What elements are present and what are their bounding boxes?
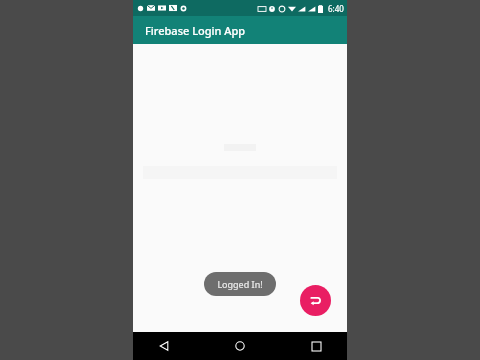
button[interactable]: Logged In! [204, 272, 276, 296]
button[interactable]: Home [227, 333, 253, 359]
button[interactable]: Back [151, 333, 177, 359]
button[interactable]: Recent apps [303, 333, 329, 359]
staticText: Logged In! [217, 278, 263, 290]
button[interactable]: Sign out [300, 285, 331, 316]
staticText: 6:40 [328, 3, 344, 14]
staticText: Firebase Login App [145, 23, 246, 38]
